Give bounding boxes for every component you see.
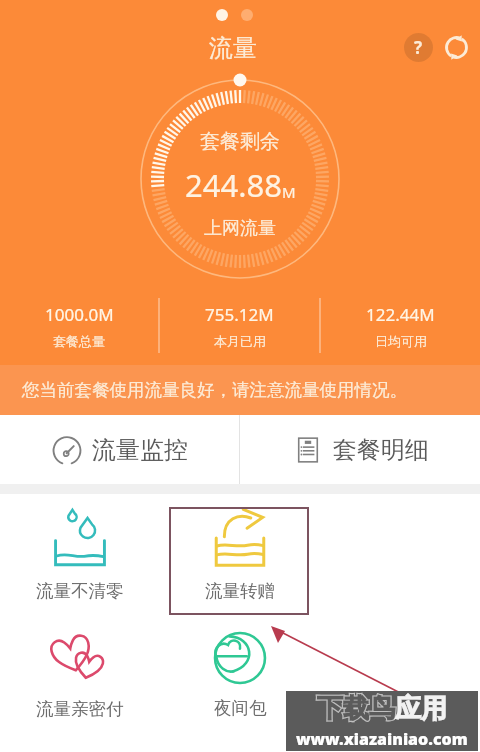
button[interactable]: 流量监控 [0,415,239,484]
staticText: 您当前套餐使用流量良好，请注意流量使用情况。 [22,379,407,401]
button[interactable]: 套餐明细 [240,415,480,484]
staticText: 流量不清零 [36,580,124,602]
button[interactable]: 1000.0M [0,298,158,353]
staticText: 应用 [395,692,447,725]
button[interactable]: 夜间包 [160,616,320,734]
button[interactable]: 流量亲密付 [0,616,160,734]
staticText: 755.12M [205,303,274,326]
button[interactable]: Help [404,33,433,62]
button[interactable]: 流量转赠 [160,494,320,616]
staticText: 流量亲密付 [36,698,124,720]
staticText: 下载鸟 [317,692,395,725]
button[interactable]: 755.12M [160,298,319,353]
staticText: 流量转赠 [205,580,275,602]
button[interactable]: Refresh [443,34,470,61]
staticText: 下载鸟 [317,692,395,725]
staticText: 套餐剩余 [200,129,280,154]
staticText: 上网流量 [204,217,276,240]
staticText: 122.44M [366,303,435,326]
staticText: M [282,182,296,202]
staticText: 流量 [209,33,257,63]
staticText: 244.88 [185,164,282,206]
staticText: 流量监控 [92,435,188,465]
staticText: 本月已用 [214,333,266,349]
button[interactable]: 流量不清零 [0,494,160,616]
staticText: 套餐总量 [53,333,105,349]
staticText: 1000.0M [45,303,114,326]
button[interactable]: 122.44M [321,298,480,353]
staticText: ? [414,36,423,59]
staticText: www.xiazainiao.com [296,728,468,750]
staticText: 套餐明细 [333,435,429,465]
staticText: 日均可用 [375,333,427,349]
staticText: 夜间包 [214,697,267,719]
